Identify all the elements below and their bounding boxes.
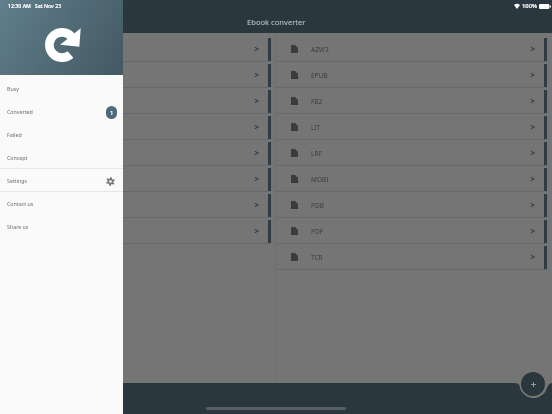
staticText: EPUB xyxy=(311,71,328,80)
button[interactable] xyxy=(0,88,271,114)
button[interactable] xyxy=(0,140,271,166)
button[interactable]: Busy xyxy=(0,78,123,101)
staticText: FB2 xyxy=(311,97,323,106)
button[interactable]: PDF xyxy=(276,218,547,244)
staticText: Ebook converter xyxy=(247,17,306,27)
staticText: PDB xyxy=(311,201,324,210)
button[interactable]: Failed xyxy=(0,124,123,147)
staticText: Settings xyxy=(7,177,28,184)
button[interactable] xyxy=(0,36,271,62)
staticText: Failed xyxy=(7,131,22,138)
button[interactable]: Settings xyxy=(0,170,123,193)
button[interactable]: PDB xyxy=(276,192,547,218)
button[interactable] xyxy=(0,166,271,192)
button[interactable]: FB2 xyxy=(276,88,547,114)
button[interactable]: Contact us xyxy=(0,193,123,216)
button[interactable]: Settings xyxy=(104,175,117,188)
staticText: PDF xyxy=(311,227,324,236)
button[interactable]: LRF xyxy=(276,140,547,166)
button[interactable]: LIT xyxy=(276,114,547,140)
button[interactable]: TCR xyxy=(276,244,547,270)
staticText: Concept xyxy=(7,154,28,161)
staticText: LIT xyxy=(311,123,321,132)
button[interactable]: Share us xyxy=(0,216,123,239)
staticText: Contact us xyxy=(7,200,34,207)
button[interactable] xyxy=(0,62,271,88)
staticText: Busy xyxy=(7,85,19,92)
button[interactable]: Concept xyxy=(0,147,123,170)
button[interactable] xyxy=(0,114,271,140)
button[interactable]: EPUB xyxy=(276,62,547,88)
staticText: 100% xyxy=(522,2,537,10)
button[interactable]: Add xyxy=(521,372,545,396)
button[interactable]: MOBI xyxy=(276,166,547,192)
staticText: 12:30 AM Sat Nov 23 xyxy=(8,2,62,9)
staticText: LRF xyxy=(311,149,322,158)
staticText: Converted xyxy=(7,108,33,115)
button[interactable] xyxy=(0,192,271,218)
staticText: MOBI xyxy=(311,175,329,184)
button[interactable]: Converted xyxy=(0,101,123,124)
staticText: Share us xyxy=(7,223,29,230)
button[interactable] xyxy=(0,218,271,244)
button[interactable]: AZW3 xyxy=(276,36,547,62)
staticText: TCR xyxy=(311,253,323,262)
staticText: 1 xyxy=(110,109,114,117)
staticText: AZW3 xyxy=(311,45,329,54)
